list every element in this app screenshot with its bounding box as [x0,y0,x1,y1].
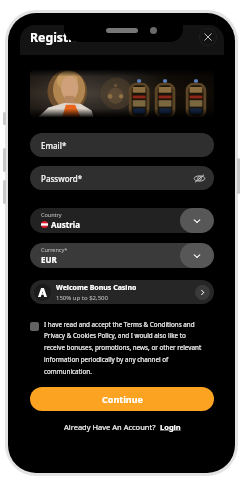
staticText: Country [41,211,62,218]
button[interactable]: Password* [30,166,214,190]
staticText: I have read and accept the Terms & Condi… [44,320,205,376]
staticText: Continue [102,393,143,405]
staticText: EUR [41,254,57,265]
staticText: Already Have An Account? [64,422,156,432]
staticText: Austria [51,219,80,230]
staticText: Login [160,422,181,432]
staticText: 150% up to $2,500 [56,294,108,302]
staticText: Welcome Bonus Casino [56,283,137,293]
button[interactable]: Close [199,28,217,46]
staticText: Registration [30,29,106,46]
staticText: Currency* [41,246,68,253]
button[interactable]: Country [30,208,214,233]
staticText: Password* [41,173,83,184]
button[interactable]: Currency* [30,243,214,268]
staticText: Email* [41,140,67,151]
button[interactable]: Expand Country [180,208,214,233]
button[interactable]: Continue [30,387,214,411]
button[interactable]: Show password [194,173,205,184]
button[interactable]: Expand Currency* [180,243,214,268]
button[interactable]: I have read and accept the Terms & Condi… [30,320,214,376]
button[interactable]: Welcome Bonus Casino [30,280,214,304]
button[interactable]: More bonus info [195,285,210,300]
button[interactable]: Email* [30,133,214,157]
button[interactable]: Login [160,422,181,432]
